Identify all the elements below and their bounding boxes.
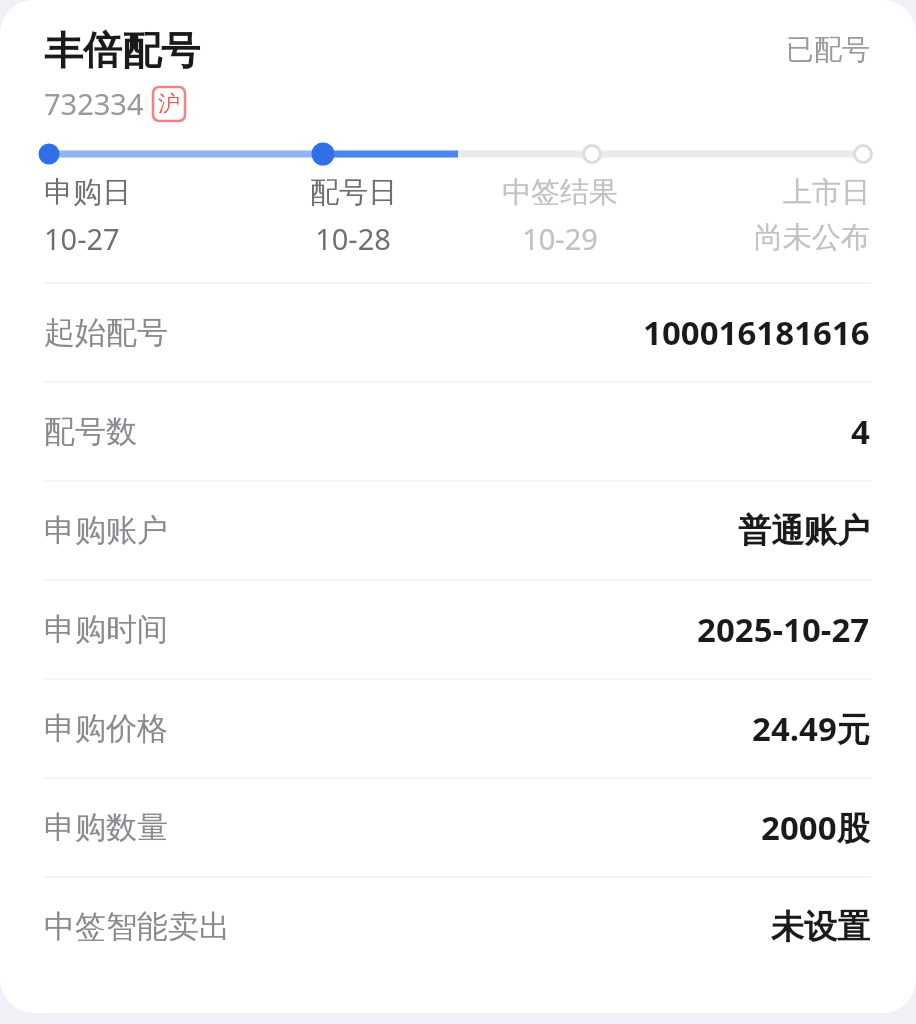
button[interactable]: 配号日 xyxy=(250,174,456,258)
staticText: 沪 xyxy=(158,90,180,118)
staticText: 申购时间 xyxy=(44,610,168,649)
button[interactable]: 申购价格 xyxy=(0,680,916,777)
button[interactable]: 申购日 xyxy=(44,174,250,258)
staticText: 10-27 xyxy=(44,219,120,258)
staticText: 申购价格 xyxy=(44,709,168,748)
button[interactable]: 中签智能卖出 xyxy=(0,878,916,975)
staticText: 100016181616 xyxy=(643,310,870,355)
staticText: 2025-10-27 xyxy=(697,607,870,652)
staticText: 申购日 xyxy=(44,174,131,211)
staticText: 申购数量 xyxy=(44,808,168,847)
staticText: 10-29 xyxy=(522,219,598,258)
staticText: 中签结果 xyxy=(502,174,618,211)
button[interactable]: 配号数 xyxy=(0,383,916,480)
button[interactable]: 申购数量 xyxy=(0,779,916,876)
staticText: 上市日 xyxy=(783,174,870,211)
staticText: 10-28 xyxy=(315,219,391,258)
staticText: 未设置 xyxy=(771,906,870,948)
staticText: 丰倍配号 xyxy=(44,26,200,75)
staticText: 配号日 xyxy=(310,174,397,211)
staticText: 24.49元 xyxy=(752,706,870,751)
staticText: 2000股 xyxy=(761,805,870,850)
button[interactable]: 申购账户 xyxy=(0,482,916,579)
staticText: 普通账户 xyxy=(738,510,870,552)
staticText: 申购账户 xyxy=(44,511,168,550)
button[interactable]: 起始配号 xyxy=(0,284,916,381)
staticText: 4 xyxy=(851,409,870,454)
staticText: 已配号 xyxy=(786,32,870,67)
button[interactable]: 上市日 xyxy=(663,174,870,256)
staticText: 中签智能卖出 xyxy=(44,907,230,946)
button[interactable]: 申购时间 xyxy=(0,581,916,678)
staticText: 起始配号 xyxy=(44,313,168,352)
staticText: 尚未公布 xyxy=(754,219,870,256)
button[interactable]: 中签结果 xyxy=(456,174,663,258)
staticText: 732334 xyxy=(44,84,144,123)
staticText: 配号数 xyxy=(44,412,137,451)
button[interactable]: 已配号 xyxy=(0,32,870,67)
